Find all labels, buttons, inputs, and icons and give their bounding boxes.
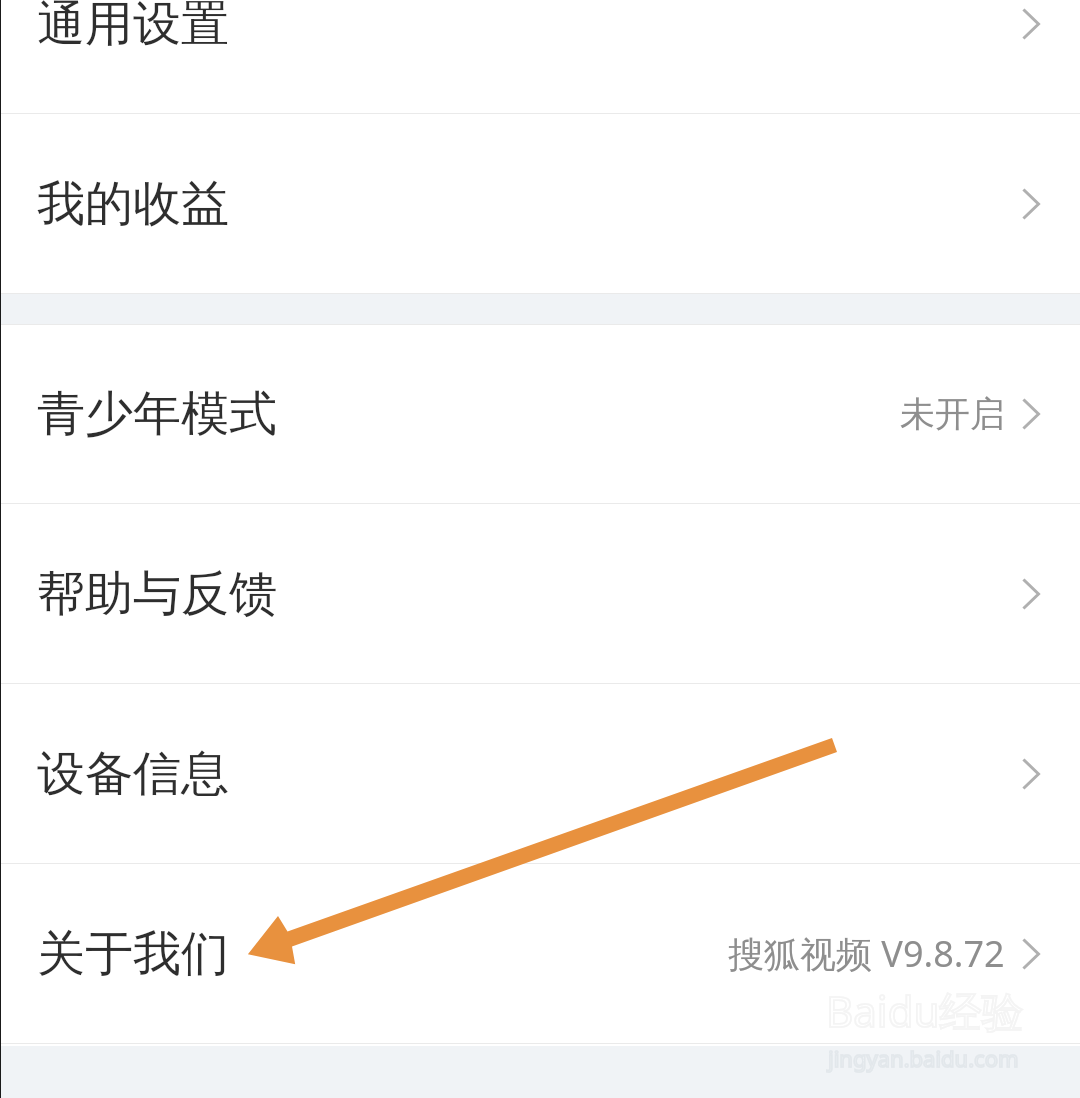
staticText: jingyan.baidu.com [828,1043,1019,1073]
staticText: 我的收益 [37,174,229,234]
other: Open 通用设置 [1023,9,1040,39]
staticText: 搜狐视频 V9.8.72 [728,929,1005,978]
staticText: 关于我们 [37,924,229,984]
staticText: 设备信息 [37,744,229,804]
staticText: 通用设置 [37,0,229,54]
button[interactable]: 通用设置 [0,0,1080,113]
other: Open 青少年模式 [1023,399,1040,429]
button[interactable]: 帮助与反馈 [0,504,1080,683]
button[interactable]: 关于我们 [0,864,1080,1043]
staticText: 青少年模式 [37,384,277,444]
other: Open 关于我们 [1023,939,1040,969]
other: Open 我的收益 [1023,189,1040,219]
staticText: Baidu经验 [826,982,1024,1039]
other: Open 设备信息 [1023,759,1040,789]
button[interactable]: 设备信息 [0,684,1080,863]
other: Open 帮助与反馈 [1023,579,1040,609]
button[interactable]: 青少年模式 [0,325,1080,503]
button[interactable]: 我的收益 [0,114,1080,293]
staticText: 未开启 [900,392,1005,436]
staticText: 帮助与反馈 [37,564,277,624]
